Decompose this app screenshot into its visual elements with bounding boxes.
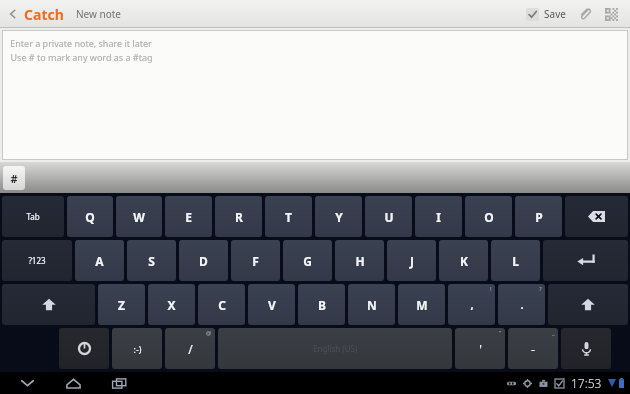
staticText: P: [535, 209, 543, 225]
staticText: I: [436, 209, 441, 225]
button[interactable]: O: [465, 196, 512, 237]
button[interactable]: N: [348, 284, 395, 325]
staticText: C: [218, 297, 226, 313]
button[interactable]: X: [148, 284, 195, 325]
staticText: X: [167, 297, 176, 313]
staticText: A: [95, 253, 104, 269]
staticText: H: [355, 253, 365, 269]
staticText: L: [512, 253, 519, 269]
staticText: ": [499, 329, 502, 337]
button[interactable]: Backspace: [565, 196, 628, 237]
staticText: M: [416, 297, 428, 313]
staticText: Catch: [24, 5, 64, 24]
button[interactable]: J: [387, 240, 436, 281]
button[interactable]: Attach: [572, 1, 598, 27]
staticText: O: [484, 209, 494, 225]
button[interactable]: K: [439, 240, 488, 281]
staticText: J: [410, 253, 414, 269]
staticText: _: [552, 329, 555, 337]
button[interactable]: M: [398, 284, 445, 325]
staticText: !: [490, 285, 492, 293]
staticText: New note: [76, 7, 121, 21]
button[interactable]: :-): [112, 328, 162, 369]
staticText: -: [531, 341, 535, 357]
button[interactable]: F: [231, 240, 280, 281]
staticText: English (US): [313, 343, 358, 354]
button[interactable]: D: [179, 240, 228, 281]
staticText: @: [206, 329, 212, 337]
staticText: ': [479, 341, 482, 357]
staticText: N: [367, 297, 377, 313]
button[interactable]: Y: [315, 196, 362, 237]
button[interactable]: B: [298, 284, 345, 325]
staticText: :-): [133, 343, 142, 355]
button[interactable]: Z: [98, 284, 145, 325]
button[interactable]: Settings: [59, 328, 109, 369]
staticText: ?123: [28, 255, 46, 266]
staticText: G: [303, 253, 312, 269]
button[interactable]: Home: [56, 372, 90, 394]
button[interactable]: C: [198, 284, 245, 325]
button[interactable]: -: [508, 328, 558, 369]
staticText: D: [199, 253, 208, 269]
staticText: Tab: [26, 211, 40, 222]
button[interactable]: .: [498, 284, 545, 325]
staticText: Enter a private note, share it later: [10, 37, 152, 49]
staticText: 17:53: [571, 375, 602, 391]
staticText: E: [185, 209, 192, 225]
staticText: Y: [335, 209, 343, 225]
button[interactable]: T: [265, 196, 312, 237]
button[interactable]: Voice input: [561, 328, 611, 369]
button[interactable]: Q: [67, 196, 113, 237]
staticText: K: [460, 253, 468, 269]
button[interactable]: G: [283, 240, 332, 281]
staticText: S: [148, 253, 155, 269]
staticText: Save: [544, 7, 566, 21]
button[interactable]: Shift: [548, 284, 628, 325]
staticText: R: [235, 209, 243, 225]
button[interactable]: E: [165, 196, 212, 237]
staticText: B: [318, 297, 326, 313]
button[interactable]: Hide keyboard: [10, 372, 44, 394]
button[interactable]: Add tag: [3, 166, 25, 190]
staticText: T: [285, 209, 292, 225]
button[interactable]: R: [215, 196, 262, 237]
button[interactable]: Back: [4, 1, 22, 27]
button[interactable]: H: [335, 240, 384, 281]
button[interactable]: Save: [520, 0, 572, 28]
staticText: F: [252, 253, 259, 269]
button[interactable]: A: [75, 240, 124, 281]
button[interactable]: ': [455, 328, 505, 369]
button[interactable]: QR code: [598, 1, 624, 27]
button[interactable]: Enter a private note, share it later: [2, 30, 628, 160]
button[interactable]: Enter: [543, 240, 628, 281]
button[interactable]: Recent apps: [102, 372, 136, 394]
staticText: ?: [539, 285, 542, 293]
button[interactable]: S: [127, 240, 176, 281]
button[interactable]: I: [415, 196, 462, 237]
staticText: .: [520, 297, 524, 312]
button[interactable]: L: [491, 240, 540, 281]
button[interactable]: Tab: [2, 196, 64, 237]
staticText: Use # to mark any word as a #tag: [10, 51, 153, 63]
staticText: Q: [85, 209, 95, 225]
staticText: U: [384, 209, 394, 225]
staticText: W: [133, 209, 145, 225]
staticText: V: [268, 297, 276, 313]
staticText: Z: [118, 297, 125, 313]
button[interactable]: ?123: [2, 240, 72, 281]
button[interactable]: ,: [448, 284, 495, 325]
button[interactable]: U: [365, 196, 412, 237]
button[interactable]: /: [165, 328, 215, 369]
staticText: /: [188, 341, 193, 357]
button[interactable]: Shift: [2, 284, 95, 325]
staticText: #: [10, 171, 18, 186]
button[interactable]: V: [248, 284, 295, 325]
button[interactable]: P: [515, 196, 562, 237]
staticText: ,: [470, 297, 474, 312]
button[interactable]: W: [116, 196, 162, 237]
